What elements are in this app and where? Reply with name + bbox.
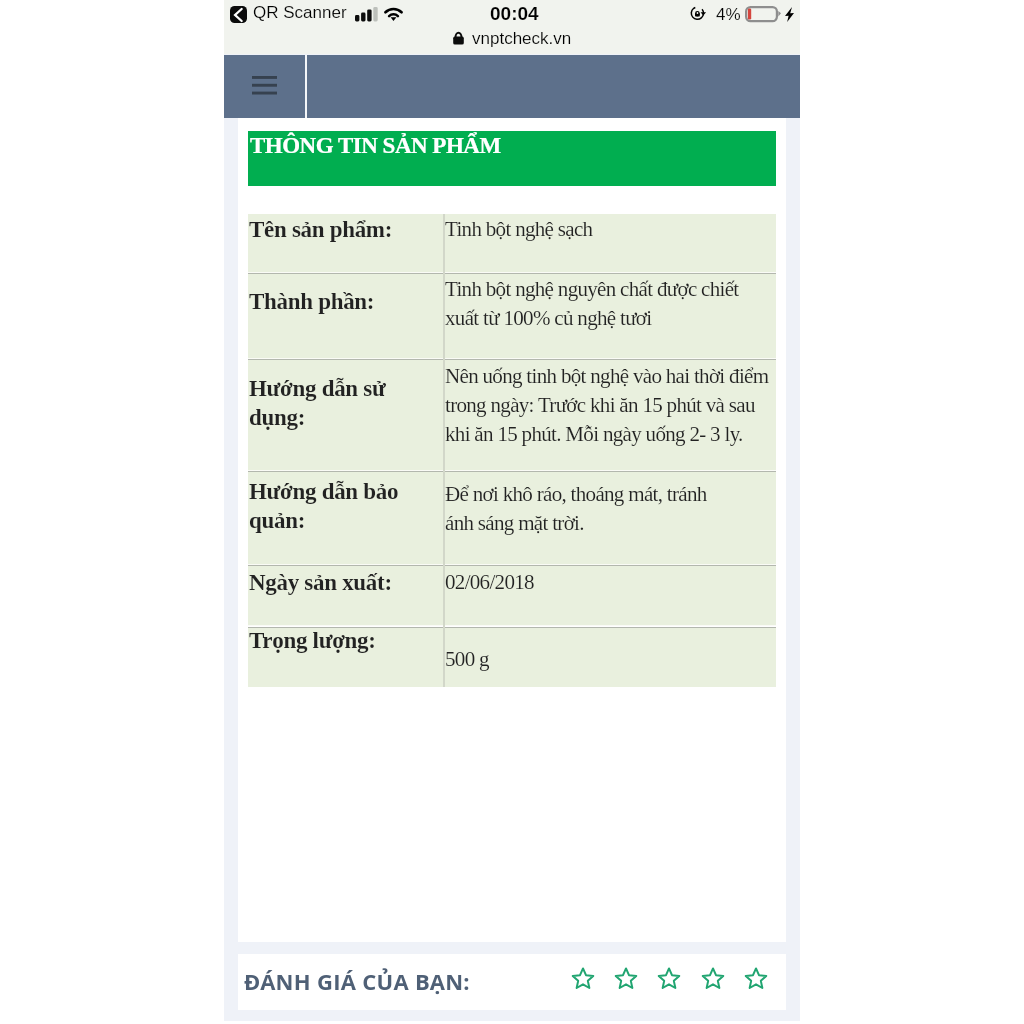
staticText: Thành phần: — [249, 286, 375, 315]
staticText: vnptcheck.vn — [472, 29, 572, 48]
button[interactable]: vnptcheck.vn — [449, 28, 576, 49]
staticText: Trọng lượng: — [249, 625, 376, 654]
staticText: THÔNG TIN SẢN PHẨM — [250, 130, 501, 159]
staticText: Hướng dẫn sử dụng: — [249, 373, 386, 431]
staticText: 4% — [716, 5, 741, 24]
button[interactable]: Rate 5 star — [735, 958, 777, 1000]
staticText: Ngày sản xuất: — [249, 567, 392, 596]
staticText: Tên sản phẩm: — [249, 214, 393, 243]
staticText: QR Scanner — [253, 3, 347, 22]
button[interactable]: Rate 2 star — [605, 958, 647, 1000]
staticText: Tinh bột nghệ nguyên chất được chiết xuấ… — [445, 273, 739, 331]
button[interactable]: Rate 3 star — [648, 958, 690, 1000]
button[interactable]: Open menu — [224, 55, 305, 118]
staticText: 00:04 — [490, 3, 539, 24]
staticText: Hướng dẫn bảo quản: — [249, 476, 399, 534]
button[interactable]: Rate 4 star — [692, 958, 734, 1000]
staticText: 500 g — [445, 643, 489, 672]
staticText: ĐÁNH GIÁ CỦA BẠN: — [244, 966, 470, 996]
staticText: Để nơi khô ráo, thoáng mát, tránh ánh sá… — [445, 478, 707, 536]
staticText: Nên uống tinh bột nghệ vào hai thời điểm… — [445, 360, 769, 447]
staticText: Tinh bột nghệ sạch — [445, 213, 593, 242]
button[interactable]: Rate 1 star — [562, 958, 604, 1000]
staticText: 02/06/2018 — [445, 566, 534, 595]
button[interactable]: Back to QR Scanner — [230, 6, 247, 23]
